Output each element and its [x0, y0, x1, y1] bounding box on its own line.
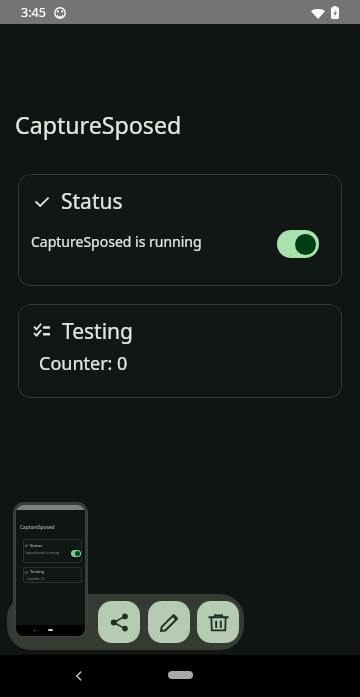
staticText: CaptureSposed is running [25, 551, 60, 555]
staticText: Testing [62, 317, 134, 346]
staticText: CaptureSposed [15, 109, 182, 141]
button[interactable]: Delete [197, 601, 239, 643]
button[interactable]: Toggle CaptureSposed [277, 230, 319, 258]
staticText: Status [30, 543, 43, 549]
button[interactable]: Edit [148, 601, 190, 643]
button[interactable]: Testing [18, 304, 342, 398]
staticText: Counter: 0 [27, 576, 44, 581]
button[interactable]: Back [72, 669, 86, 683]
staticText: 3:45 [21, 4, 46, 21]
staticText: CaptureSposed is running [31, 232, 202, 251]
staticText: Testing [30, 569, 45, 575]
staticText: Status [61, 187, 123, 216]
button[interactable]: Status [18, 174, 342, 286]
staticText: CaptureSposed [20, 524, 55, 531]
button[interactable]: Share [98, 601, 140, 643]
staticText: Counter: 0 [39, 351, 128, 376]
